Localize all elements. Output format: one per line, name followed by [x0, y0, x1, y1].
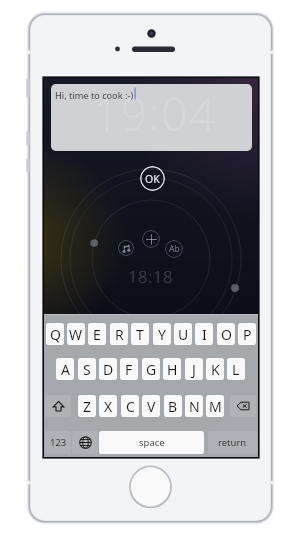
button[interactable]: N — [185, 395, 203, 417]
staticText: Hi, time to cook :-) — [55, 89, 134, 102]
button[interactable]: C — [121, 395, 139, 417]
staticText: H — [167, 360, 178, 379]
button[interactable]: F — [120, 358, 138, 380]
staticText: E — [93, 325, 101, 344]
button[interactable]: S — [78, 358, 96, 380]
button[interactable]: M — [206, 395, 224, 417]
button[interactable]: V — [142, 395, 160, 417]
button[interactable]: space — [99, 431, 204, 454]
staticText: V — [147, 397, 156, 416]
button[interactable]: O — [217, 323, 235, 345]
staticText: N — [189, 397, 200, 416]
staticText: return — [218, 436, 247, 449]
staticText: space — [139, 436, 165, 449]
button[interactable]: I — [195, 323, 213, 345]
button[interactable]: L — [227, 358, 245, 380]
other: Shift — [52, 400, 65, 413]
button[interactable]: Change language — [72, 431, 98, 454]
button[interactable]: Shift — [45, 395, 71, 417]
staticText: P — [243, 325, 252, 344]
button[interactable]: J — [185, 358, 203, 380]
staticText: F — [125, 360, 133, 379]
button[interactable]: D — [99, 358, 117, 380]
staticText: J — [192, 360, 196, 379]
staticText: D — [103, 360, 114, 379]
staticText: X — [104, 397, 113, 416]
button[interactable]: Z — [78, 395, 96, 417]
staticText: S — [83, 360, 91, 379]
staticText: R — [115, 325, 124, 344]
button[interactable]: Music — [118, 240, 134, 256]
staticText: A — [61, 360, 70, 379]
button[interactable]: K — [206, 358, 224, 380]
button[interactable]: P — [238, 323, 256, 345]
staticText: I — [202, 325, 207, 344]
staticText: 18:18 — [128, 265, 174, 287]
button[interactable]: Backspace — [230, 395, 256, 417]
button[interactable]: T — [131, 323, 149, 345]
staticText: Z — [83, 397, 92, 416]
staticText: Ab — [169, 243, 180, 255]
button[interactable]: OK — [140, 166, 165, 191]
button[interactable]: B — [164, 395, 182, 417]
staticText: B — [168, 397, 178, 416]
staticText: T — [136, 325, 144, 344]
staticText: U — [178, 325, 189, 344]
button[interactable]: A — [56, 358, 74, 380]
button[interactable]: 123 — [45, 431, 71, 454]
other: Change language — [79, 436, 92, 449]
staticText: O — [221, 325, 232, 344]
staticText: K — [211, 360, 220, 379]
button[interactable]: U — [174, 323, 192, 345]
button[interactable]: X — [99, 395, 117, 417]
button[interactable]: R — [110, 323, 128, 345]
button[interactable]: W — [67, 323, 85, 345]
staticText: C — [126, 397, 135, 416]
other: Backspace — [236, 399, 250, 413]
staticText: OK — [145, 172, 160, 186]
staticText: G — [146, 360, 157, 379]
button[interactable]: 19:04 — [51, 84, 252, 151]
button[interactable]: G — [142, 358, 160, 380]
button[interactable]: Q — [46, 323, 64, 345]
staticText: W — [69, 325, 83, 344]
staticText: L — [232, 360, 240, 379]
button[interactable]: H — [163, 358, 181, 380]
staticText: Y — [158, 325, 166, 344]
staticText: Q — [50, 325, 61, 344]
staticText: 123 — [50, 436, 67, 449]
staticText: 19:04 — [93, 84, 217, 145]
button[interactable]: Y — [153, 323, 171, 345]
button[interactable]: Text style — [165, 240, 183, 258]
staticText: M — [209, 397, 222, 416]
button[interactable]: return — [208, 431, 257, 454]
button[interactable]: Add — [142, 230, 160, 248]
button[interactable]: E — [88, 323, 106, 345]
